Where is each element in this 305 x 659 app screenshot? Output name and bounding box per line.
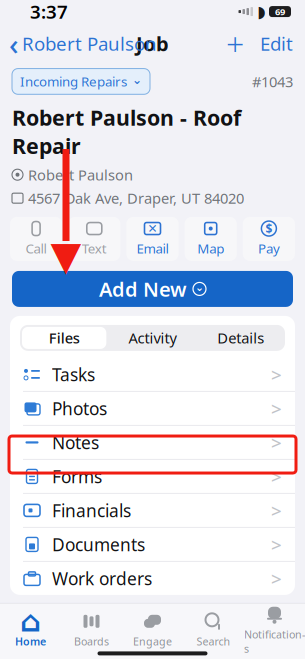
staticText: Notifications	[244, 627, 305, 655]
button[interactable]: ⌂	[0, 604, 61, 648]
button[interactable]: Notifications	[244, 597, 305, 655]
staticText: Activity	[128, 328, 176, 348]
staticText: 4567 Oak Ave, Draper, UT 84020	[28, 188, 244, 208]
button[interactable]: Tasks	[10, 358, 295, 392]
button[interactable]: Activity	[108, 327, 197, 349]
staticText: Files	[49, 328, 80, 348]
button[interactable]: Details	[197, 327, 285, 349]
button[interactable]: Edit	[250, 27, 305, 60]
button[interactable]: Text	[68, 217, 120, 261]
staticText: Engage	[133, 634, 172, 648]
staticText: >	[271, 430, 282, 455]
button[interactable]: Files	[22, 327, 106, 349]
staticText: Robert Paulson - Roof Repair	[12, 103, 241, 160]
button[interactable]: Search	[183, 604, 244, 648]
staticText: Photos	[52, 397, 107, 420]
staticText: ‹	[9, 24, 19, 63]
staticText: Map	[197, 240, 224, 257]
staticText: Add New	[99, 276, 187, 302]
staticText: 69	[275, 5, 285, 18]
staticText: $	[265, 221, 272, 236]
button[interactable]: Photos	[10, 392, 295, 426]
staticText: ⌄	[195, 281, 204, 293]
button[interactable]: Add	[220, 20, 250, 67]
staticText: Tasks	[52, 363, 95, 386]
staticText: Job	[136, 30, 169, 57]
button[interactable]: ‹	[0, 20, 157, 67]
button[interactable]: Add New	[12, 271, 293, 307]
staticText: Incoming Repairs	[20, 73, 127, 90]
button[interactable]: Notes	[10, 426, 295, 460]
staticText: ⌄	[132, 73, 142, 87]
staticText: Boards	[74, 634, 109, 648]
staticText: Text	[82, 240, 107, 257]
button[interactable]: Incoming Repairs	[12, 69, 150, 94]
staticText: Details	[217, 328, 264, 348]
button[interactable]: Documents	[10, 528, 295, 562]
staticText: ◗	[257, 2, 265, 21]
button[interactable]: Forms	[10, 460, 295, 494]
button[interactable]: Work orders	[10, 562, 295, 595]
staticText: Robert Paulson	[22, 31, 157, 56]
staticText: Call	[26, 240, 47, 257]
staticText: Financials	[52, 499, 131, 522]
button[interactable]: ✕	[126, 217, 179, 261]
staticText: >	[271, 362, 282, 387]
button[interactable]: $	[243, 217, 295, 261]
staticText: ⌂	[20, 605, 41, 638]
staticText: Robert Paulson	[28, 165, 133, 184]
staticText: >	[271, 566, 282, 591]
staticText: ▼	[50, 233, 81, 279]
staticText: Email	[136, 240, 168, 257]
staticText: Search	[196, 634, 230, 648]
staticText: >	[271, 396, 282, 421]
staticText: Documents	[52, 533, 145, 556]
staticText: Work orders	[52, 567, 152, 590]
staticText: >	[271, 532, 282, 557]
staticText: Edit	[260, 31, 293, 56]
staticText: ✕	[147, 222, 157, 235]
button[interactable]: Map	[185, 217, 237, 261]
staticText: 3:37	[30, 0, 68, 24]
staticText: >	[271, 498, 282, 523]
staticText: Home	[15, 634, 46, 648]
staticText: Pay	[258, 240, 280, 257]
button[interactable]: Engage	[122, 604, 183, 648]
staticText: >	[271, 464, 282, 489]
staticText: +	[226, 22, 244, 65]
button[interactable]: Call	[10, 217, 62, 261]
button[interactable]: Financials	[10, 494, 295, 528]
button[interactable]: Boards	[61, 604, 122, 648]
staticText: #1043	[252, 72, 293, 91]
staticText: Notes	[52, 431, 99, 454]
staticText: Forms	[52, 465, 102, 488]
